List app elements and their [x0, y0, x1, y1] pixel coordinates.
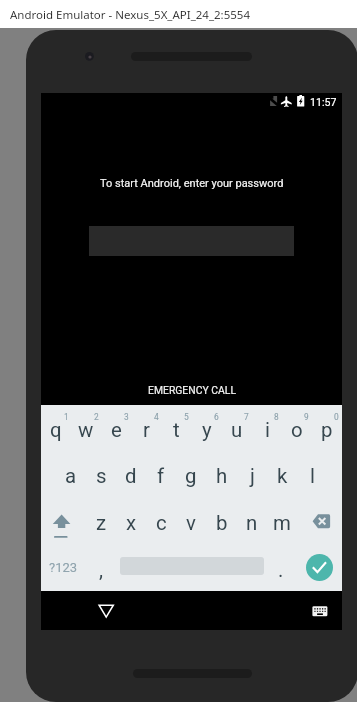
staticText: 7	[244, 412, 249, 422]
staticText: k	[277, 464, 288, 488]
staticText: Android Emulator - Nexus_5X_API_24_2:555…	[10, 7, 251, 23]
button[interactable]: l	[297, 453, 327, 499]
button[interactable]: o	[282, 407, 312, 453]
button[interactable]: t	[161, 407, 191, 453]
staticText: a	[65, 464, 77, 488]
staticText: v	[186, 511, 196, 535]
staticText: m	[273, 511, 291, 535]
staticText: n	[246, 511, 258, 535]
button[interactable]: j	[237, 453, 267, 499]
staticText: 0	[334, 412, 339, 422]
button[interactable]: d	[116, 453, 146, 499]
button[interactable]: r	[131, 407, 161, 453]
button[interactable]: h	[207, 453, 237, 499]
button[interactable]: a	[56, 453, 86, 499]
staticText: u	[231, 418, 243, 442]
button[interactable]: EMERGENCY CALL	[138, 378, 246, 401]
button[interactable]: z	[86, 500, 116, 546]
button[interactable]: Show keyboard	[303, 591, 339, 627]
staticText: 5	[184, 412, 189, 422]
staticText: 9	[304, 412, 309, 422]
staticText: q	[50, 418, 62, 442]
staticText: j	[250, 464, 255, 488]
button[interactable]: Back	[89, 591, 125, 627]
button[interactable]: m	[267, 500, 297, 546]
staticText: 11:57	[310, 96, 337, 108]
staticText: .	[278, 558, 284, 582]
staticText: z	[96, 511, 107, 535]
button[interactable]: .	[267, 548, 295, 592]
button[interactable]: s	[86, 453, 116, 499]
staticText: t	[173, 418, 180, 442]
staticText: To start Android, enter your password	[100, 177, 284, 190]
button[interactable]: p	[312, 407, 342, 453]
staticText: 4	[154, 412, 159, 422]
staticText: c	[156, 511, 167, 535]
staticText: s	[96, 464, 107, 488]
staticText: 1	[64, 412, 69, 422]
staticText: i	[265, 418, 270, 442]
staticText: y	[202, 418, 212, 442]
button[interactable]: Shift	[41, 500, 71, 546]
staticText: 8	[274, 412, 279, 422]
button[interactable]: w	[71, 407, 101, 453]
button[interactable]: ,	[87, 548, 115, 592]
staticText: o	[291, 418, 303, 442]
button[interactable]: q	[41, 407, 71, 453]
button[interactable]: c	[146, 500, 176, 546]
button[interactable]: e	[101, 407, 131, 453]
staticText: p	[321, 418, 333, 442]
staticText: g	[185, 464, 197, 488]
staticText: b	[216, 511, 228, 535]
staticText: w	[78, 418, 94, 442]
button[interactable]: g	[176, 453, 206, 499]
staticText: h	[216, 464, 228, 488]
staticText: 3	[124, 412, 129, 422]
button[interactable]: Backspace	[312, 500, 342, 546]
staticText: ?123	[49, 560, 78, 575]
button[interactable]: b	[207, 500, 237, 546]
staticText: 2	[94, 412, 99, 422]
button[interactable]: ?123	[41, 545, 86, 589]
button[interactable]: Enter	[306, 554, 333, 581]
button[interactable]: k	[267, 453, 297, 499]
staticText: e	[111, 418, 122, 442]
staticText: d	[125, 464, 137, 488]
button[interactable]: i	[252, 407, 282, 453]
staticText: 6	[214, 412, 219, 422]
button[interactable]: y	[192, 407, 222, 453]
button[interactable]: f	[146, 453, 176, 499]
staticText: f	[157, 464, 165, 488]
staticText: ,	[99, 558, 104, 582]
staticText: r	[143, 418, 150, 442]
staticText: x	[126, 511, 137, 535]
staticText: EMERGENCY CALL	[148, 384, 236, 395]
button[interactable]: x	[116, 500, 146, 546]
button[interactable]: n	[237, 500, 267, 546]
staticText: l	[310, 464, 315, 488]
button[interactable]: u	[222, 407, 252, 453]
button[interactable]: v	[176, 500, 206, 546]
